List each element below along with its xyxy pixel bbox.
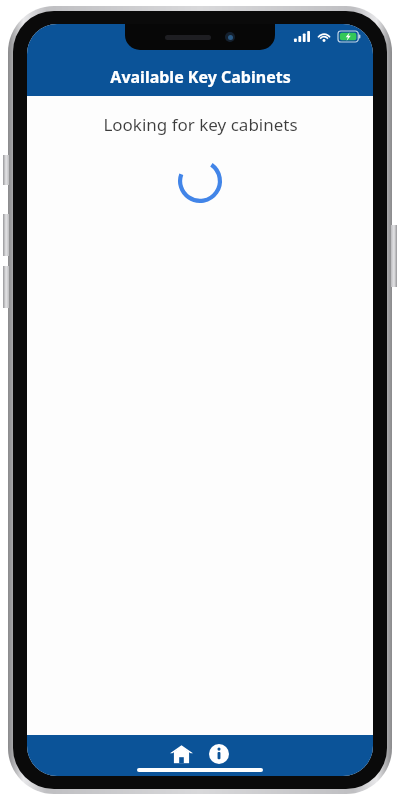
staticText: Available Key Cabinets <box>110 66 291 88</box>
button[interactable]: Home <box>166 739 196 769</box>
button[interactable]: Information <box>204 739 234 769</box>
staticText: Looking for key cabinets <box>103 113 298 136</box>
